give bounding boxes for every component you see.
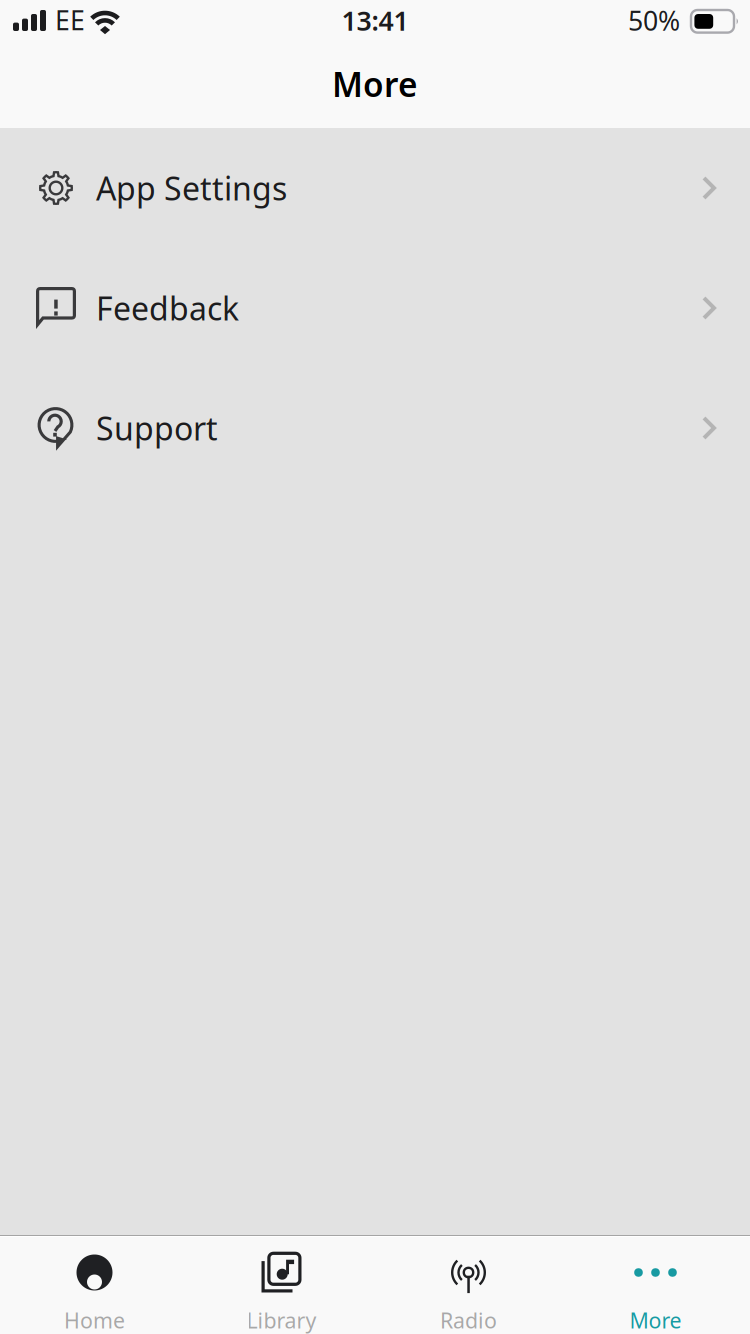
staticText: More <box>629 1306 681 1334</box>
button[interactable]: Radio <box>375 1236 562 1334</box>
staticText: More <box>332 62 418 106</box>
staticText: 13:41 <box>341 3 408 38</box>
staticText: App Settings <box>96 167 287 209</box>
staticText: Home <box>64 1306 125 1334</box>
button[interactable]: App Settings <box>0 128 750 248</box>
staticText: Feedback <box>96 287 239 329</box>
button[interactable]: Feedback <box>0 248 750 368</box>
staticText: Library <box>246 1306 316 1334</box>
staticText: EE <box>55 2 85 38</box>
button[interactable]: Library <box>188 1236 375 1334</box>
staticText: Support <box>96 407 218 449</box>
button[interactable]: Home <box>1 1236 188 1334</box>
staticText: Radio <box>440 1306 497 1334</box>
button[interactable]: More <box>562 1236 749 1334</box>
button[interactable]: Support <box>0 368 750 488</box>
staticText: 50% <box>628 3 680 38</box>
